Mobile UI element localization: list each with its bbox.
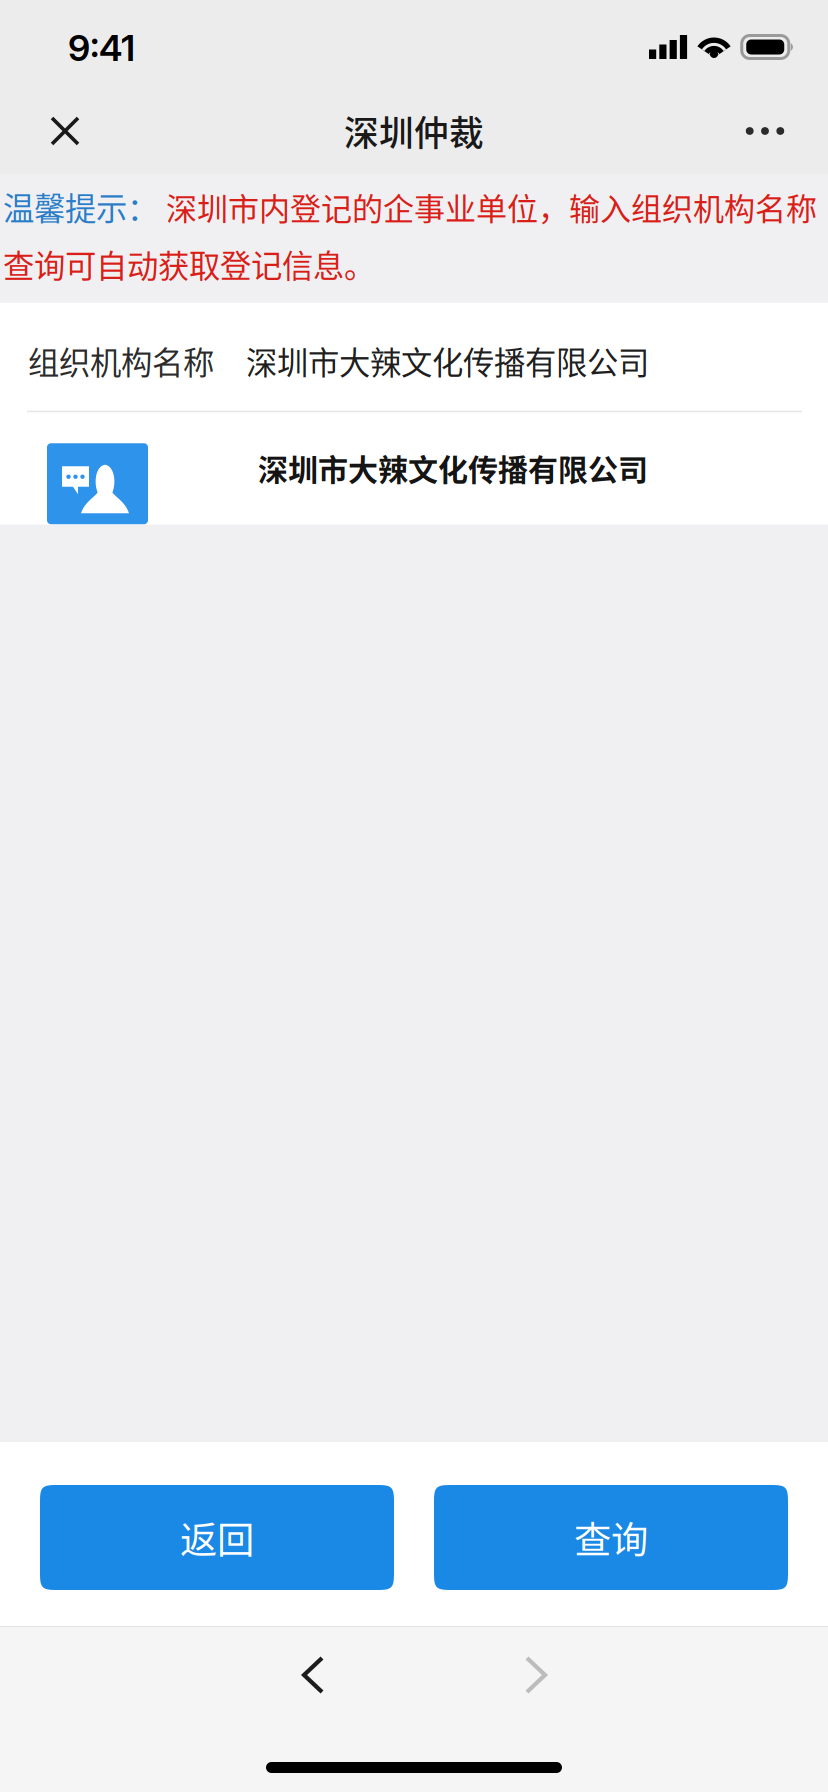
staticText: 深圳市内登记的企事业单位，输入组织机构名称	[166, 184, 817, 229]
button[interactable]: 前进	[495, 1627, 577, 1713]
button[interactable]: 后退	[272, 1627, 354, 1713]
staticText: 查询	[574, 1510, 648, 1565]
button[interactable]: 查询	[434, 1485, 788, 1590]
button[interactable]: 更多	[722, 90, 808, 172]
staticText: 9:41	[68, 26, 135, 70]
button[interactable]: 关闭	[20, 90, 110, 172]
staticText: 深圳仲裁	[344, 106, 484, 156]
staticText: 返回	[180, 1510, 254, 1565]
staticText: 查询可自动获取登记信息。	[3, 241, 375, 287]
staticText: 组织机构名称	[28, 338, 214, 383]
button[interactable]: 返回	[40, 1485, 394, 1590]
staticText: 深圳市大辣文化传播有限公司	[246, 338, 649, 383]
button[interactable]: 深圳市大辣文化传播有限公司	[0, 412, 828, 524]
staticText: 深圳市大辣文化传播有限公司	[258, 446, 648, 489]
staticText: 温馨提示：	[3, 184, 158, 229]
